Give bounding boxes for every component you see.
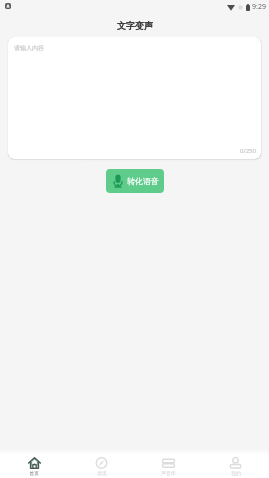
staticText: 首页: [29, 470, 39, 476]
staticText: 发现: [97, 470, 107, 476]
staticText: 文字变声: [117, 20, 153, 31]
staticText: 转化语音: [127, 176, 159, 186]
staticText: 文字变声: [117, 20, 153, 31]
staticText: 9:29: [252, 2, 266, 12]
staticText: 0/250: [240, 147, 256, 155]
staticText: 我的: [231, 470, 241, 476]
button[interactable]: 声音库: [135, 457, 202, 476]
button[interactable]: 转化语音: [106, 169, 164, 193]
button[interactable]: 发现: [68, 457, 135, 476]
button[interactable]: 我的: [202, 457, 269, 476]
staticText: 请输入内容: [14, 44, 44, 52]
button[interactable]: 首页: [0, 457, 68, 476]
staticText: 声音库: [161, 470, 176, 476]
